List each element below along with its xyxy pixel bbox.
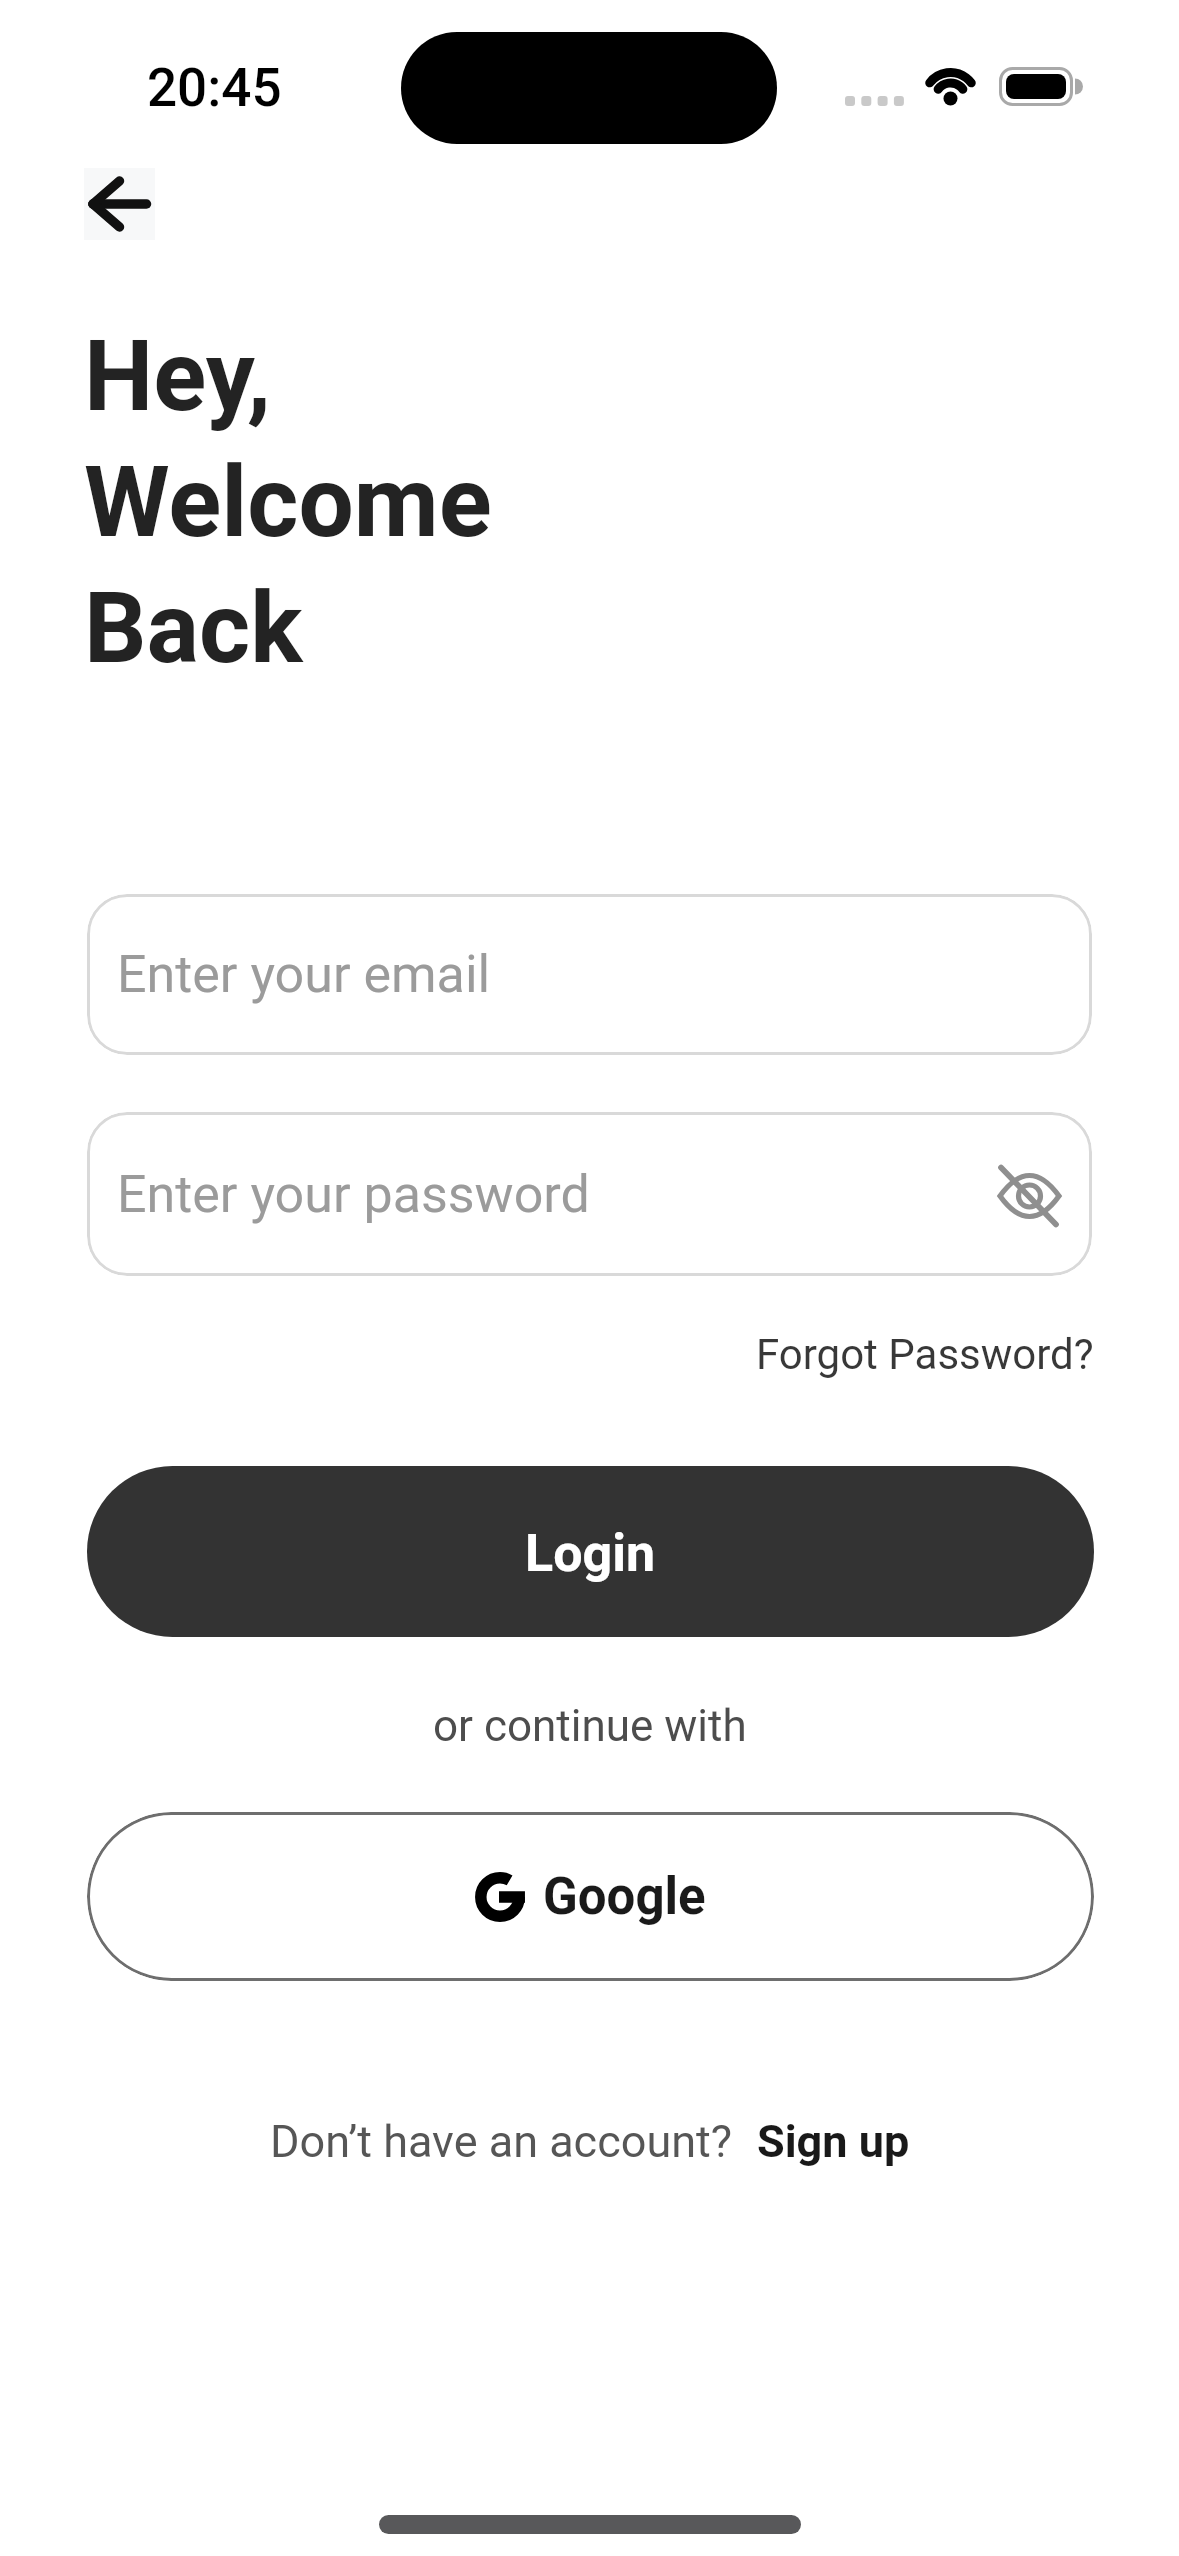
button[interactable]: Forgot Password? <box>690 1314 1094 1394</box>
staticText: Enter your email <box>117 944 491 1005</box>
staticText: Don’t have an account? <box>270 2115 733 2168</box>
staticText: or continue with <box>433 1700 747 1752</box>
button[interactable] <box>995 1162 1065 1232</box>
button[interactable]: Sign up <box>757 2115 910 2168</box>
button[interactable]: Google <box>87 1812 1094 1981</box>
staticText: 20:45 <box>147 57 282 118</box>
button[interactable]: Enter your email <box>87 894 1092 1055</box>
button[interactable]: Enter your password <box>87 1112 1092 1276</box>
button[interactable] <box>84 168 155 240</box>
staticText: Enter your password <box>117 1164 590 1225</box>
staticText: Login <box>525 1523 656 1584</box>
staticText: Hey, Welcome Back <box>84 319 492 686</box>
staticText: Sign up <box>757 2115 910 2168</box>
button[interactable]: Login <box>87 1466 1094 1637</box>
staticText: Forgot Password? <box>756 1330 1094 1379</box>
staticText: Google <box>543 1867 706 1927</box>
